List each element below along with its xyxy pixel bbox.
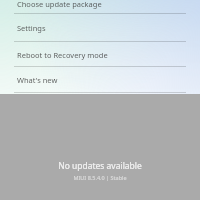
staticText: Reboot to Recovery mode <box>17 50 108 60</box>
button[interactable]: Reboot to Recovery mode <box>0 42 200 67</box>
staticText: What's new <box>17 75 58 85</box>
staticText: Settings <box>17 23 46 33</box>
button[interactable]: What's new <box>0 67 200 93</box>
button[interactable]: Settings <box>0 14 200 42</box>
staticText: No updates available <box>58 160 142 172</box>
staticText: Choose update package <box>17 0 102 9</box>
button[interactable]: Choose update package <box>0 0 200 14</box>
staticText: MIUI 8.5.4.0 | Stable <box>73 174 127 181</box>
